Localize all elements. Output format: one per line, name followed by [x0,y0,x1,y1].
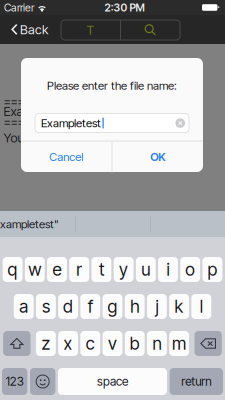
button[interactable]: m [169,331,189,356]
staticText: a [19,296,28,317]
staticText: Please enter the file name: [47,79,177,92]
button[interactable]: q [3,257,22,282]
button[interactable]: e [47,257,67,282]
button[interactable]: w [25,257,45,282]
staticText: p [207,259,217,280]
staticText: ========================== [4,115,186,129]
staticText: s [42,296,50,317]
button[interactable]: o [180,257,200,282]
button[interactable]: t [91,257,111,282]
staticText: x [64,333,73,354]
button[interactable]: OK [112,141,203,172]
button[interactable]: Emoji keyboard [30,368,55,395]
staticText: Back [20,22,48,37]
staticText: T [86,22,94,38]
staticText: w [28,259,41,280]
staticText: z [41,333,50,354]
button[interactable]: n [147,331,167,356]
staticText: e [52,259,61,280]
button[interactable]: h [125,294,145,319]
button[interactable]: Cancel [21,141,112,172]
button[interactable]: 123 [2,368,27,395]
button[interactable]: Back [0,15,56,44]
staticText: OK [150,150,165,164]
staticText: l [200,296,203,317]
button[interactable]: v [102,331,122,356]
staticText: 2:30 PM [104,1,144,14]
button[interactable]: Search [121,20,180,40]
staticText: =========================== [4,94,193,109]
button[interactable]: s [36,294,56,319]
staticText: o [185,259,195,280]
button[interactable]: i [158,257,178,282]
button[interactable]: c [80,331,100,356]
staticText: v [108,333,117,354]
staticText: q [8,259,18,280]
button[interactable]: Delete [194,331,222,356]
button[interactable]: a [14,294,34,319]
staticText: You may type some text here [3,130,165,145]
staticText: r [76,259,82,280]
staticText: y [119,259,128,280]
staticText: g [107,296,117,317]
button[interactable]: r [69,257,89,282]
staticText: t [99,259,104,280]
staticText: m [172,333,186,354]
staticText: 123 [6,374,24,389]
button[interactable]: x [58,331,78,356]
staticText: b [130,333,140,354]
button[interactable]: f [80,294,100,319]
staticText: d [63,296,73,317]
staticText: Example test [3,103,74,119]
staticText: Carrier [4,1,34,14]
button[interactable]: d [58,294,78,319]
button[interactable]: g [102,294,122,319]
button[interactable]: j [147,294,167,319]
button[interactable]: l [191,294,211,319]
staticText: return [181,374,211,389]
staticText: h [130,296,139,317]
button[interactable]: u [136,257,156,282]
staticText: i [166,259,169,280]
staticText: space [97,374,128,389]
button[interactable]: y [114,257,133,282]
button[interactable]: b [125,331,145,356]
button[interactable]: T [61,20,120,40]
button[interactable]: space [58,368,167,395]
staticText: Cancel [49,150,83,164]
button[interactable]: k [169,294,189,319]
staticText: "Exampletest" [0,217,59,231]
button[interactable]: return [170,368,223,395]
button[interactable]: z [36,331,56,356]
staticText: Exampletest [41,116,101,130]
button[interactable]: p [202,257,222,282]
button[interactable]: Shift [3,331,30,356]
staticText: u [141,259,150,280]
button[interactable]: "Exampletest" [0,211,75,237]
staticText: f [88,296,93,317]
staticText: c [86,333,95,354]
staticText: j [155,296,158,317]
staticText: n [152,333,161,354]
staticText: k [175,296,184,317]
